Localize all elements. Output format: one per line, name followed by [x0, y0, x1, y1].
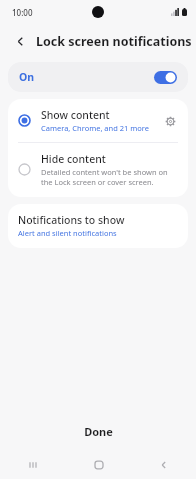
staticText: 10:00 [12, 7, 33, 18]
button[interactable]: Back [131, 451, 196, 479]
staticText: Alert and silent notifications [18, 228, 117, 238]
button[interactable]: On [8, 62, 188, 92]
button[interactable]: Back [9, 30, 31, 52]
staticText: Lock screen notifications [36, 33, 192, 50]
button[interactable]: Recents [0, 451, 66, 479]
button[interactable]: Home [66, 451, 131, 479]
staticText: Notifications to show [18, 213, 125, 227]
staticText: Camera, Chrome, and 21 more [41, 123, 150, 133]
staticText: Hide content [41, 152, 106, 166]
button[interactable]: Show content [8, 99, 188, 142]
staticText: On [19, 70, 35, 84]
button[interactable]: Notifications to show [8, 204, 188, 248]
button[interactable]: Done [0, 411, 196, 451]
staticText: Done [84, 424, 113, 439]
staticText: Detailed content won't be shown on the L… [41, 167, 178, 187]
button[interactable]: Settings [160, 111, 180, 131]
staticText: Show content [41, 108, 110, 122]
button[interactable]: Hide content [8, 143, 188, 197]
